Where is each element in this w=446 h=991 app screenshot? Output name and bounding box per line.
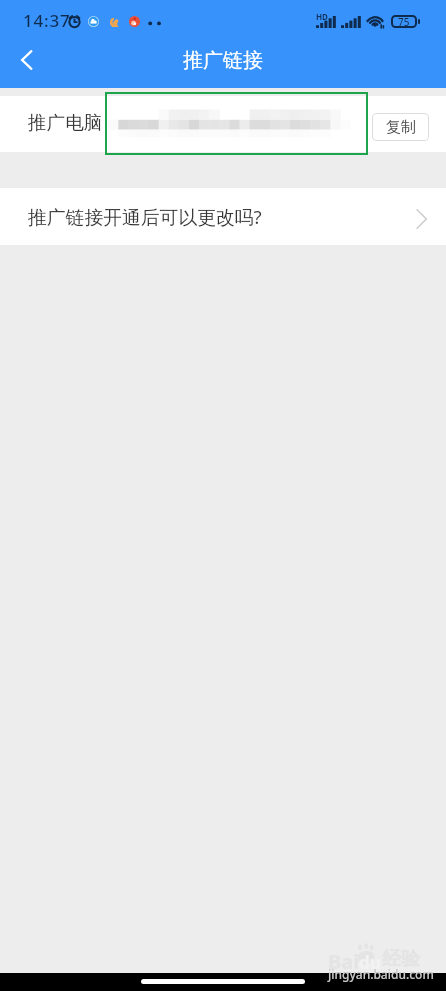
staticText: 经验: [382, 947, 420, 971]
staticText: du: [359, 951, 381, 974]
staticText: 复制: [386, 118, 416, 137]
button[interactable]: Back: [10, 43, 44, 77]
button[interactable]: 推广链接开通后可以更改吗?: [0, 188, 446, 245]
staticText: 75: [398, 15, 410, 28]
button[interactable]: [105, 92, 368, 155]
staticText: jingyan.baidu.com: [328, 966, 434, 982]
staticText: HD: [316, 11, 328, 22]
staticText: 推广链接开通后可以更改吗?: [28, 204, 262, 230]
staticText: Bai: [328, 948, 360, 974]
staticText: 推广链接: [0, 48, 446, 73]
staticText: 14:37: [23, 9, 71, 32]
button[interactable]: 复制: [372, 113, 429, 141]
staticText: 推广电脑: [28, 111, 103, 134]
